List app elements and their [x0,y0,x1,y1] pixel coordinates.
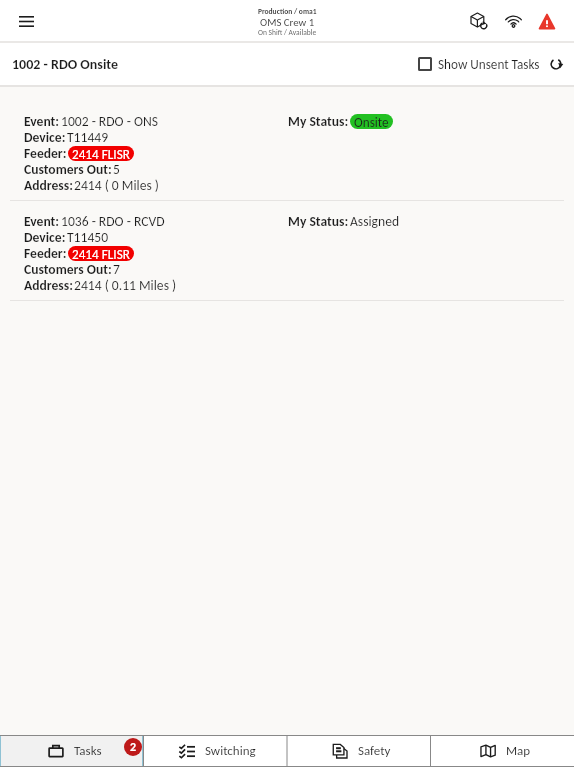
staticText: My Status: [288,113,349,129]
button[interactable]: Event: [0,87,574,200]
staticText: Device: [24,229,66,245]
staticText: 1036 - RDO - RCVD [61,213,165,229]
staticText: Map [506,743,531,759]
button[interactable]: Event: [0,201,574,300]
staticText: 5 [113,161,120,177]
button[interactable]: Sync package [466,8,492,34]
button[interactable]: Menu [8,3,44,39]
staticText: OMS Crew 1 [260,16,315,29]
staticText: 7 [113,261,120,277]
staticText: 2414 FLISR [72,246,130,261]
staticText: Safety [358,743,391,759]
staticText: My Status: [288,213,349,229]
staticText: T11449 [67,129,109,145]
button[interactable]: Show Unsent Tasks [414,50,544,78]
staticText: Production / oma1 [258,7,317,16]
button[interactable]: Safety [286,735,430,767]
button[interactable]: Tasks [0,735,143,767]
button[interactable]: Alerts [534,8,560,34]
staticText: On Shift / Available [258,28,317,37]
staticText: Address: [24,277,73,293]
staticText: Tasks [74,743,102,759]
button[interactable]: Refresh [544,51,570,77]
staticText: Device: [24,129,66,145]
button[interactable]: Switching [143,735,286,767]
button[interactable]: Network status [500,8,526,34]
staticText: Show Unsent Tasks [438,56,540,72]
staticText: Onsite [354,114,389,129]
staticText: 2414 ( 0 Miles ) [74,177,159,193]
staticText: Feeder: [24,145,67,161]
staticText: Event: [24,113,60,129]
staticText: Switching [205,743,256,759]
staticText: Feeder: [24,245,67,261]
staticText: 1002 - RDO Onsite [12,56,119,73]
button[interactable]: Map [430,735,574,767]
staticText: Customers Out: [24,161,112,177]
staticText: 2 [130,740,137,755]
staticText: Assigned [350,213,400,229]
staticText: Event: [24,213,60,229]
staticText: Address: [24,177,73,193]
staticText: Customers Out: [24,261,112,277]
staticText: T11450 [67,229,109,245]
staticText: 2414 FLISR [72,146,130,161]
staticText: 2414 ( 0.11 Miles ) [74,277,177,293]
staticText: 1002 - RDO - ONS [61,113,158,129]
